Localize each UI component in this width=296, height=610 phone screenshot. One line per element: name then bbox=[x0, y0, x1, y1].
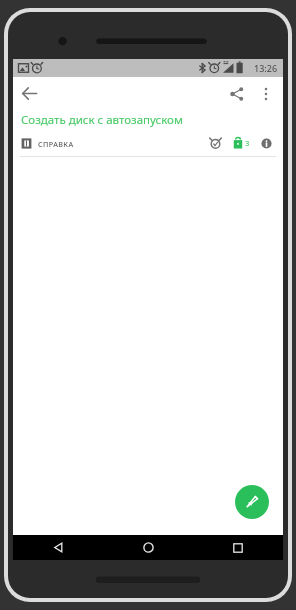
staticText: Создать диск с автозапуском bbox=[21, 112, 183, 128]
button[interactable]: Back bbox=[13, 535, 103, 560]
button[interactable]: 3 bbox=[231, 135, 252, 151]
staticText: 13:26 bbox=[254, 62, 278, 74]
button[interactable]: Reminder bbox=[205, 133, 225, 153]
button[interactable]: Home bbox=[103, 535, 193, 560]
button[interactable]: Edit bbox=[235, 485, 269, 519]
button[interactable]: Recent apps bbox=[193, 535, 283, 560]
button[interactable]: Information bbox=[256, 133, 276, 153]
button[interactable]: СПРАВКА bbox=[21, 136, 74, 151]
button[interactable]: Share bbox=[222, 79, 252, 109]
button[interactable]: More options bbox=[252, 80, 280, 108]
button[interactable]: Back bbox=[13, 77, 46, 110]
staticText: 3 bbox=[245, 138, 250, 148]
staticText: СПРАВКА bbox=[38, 139, 74, 149]
